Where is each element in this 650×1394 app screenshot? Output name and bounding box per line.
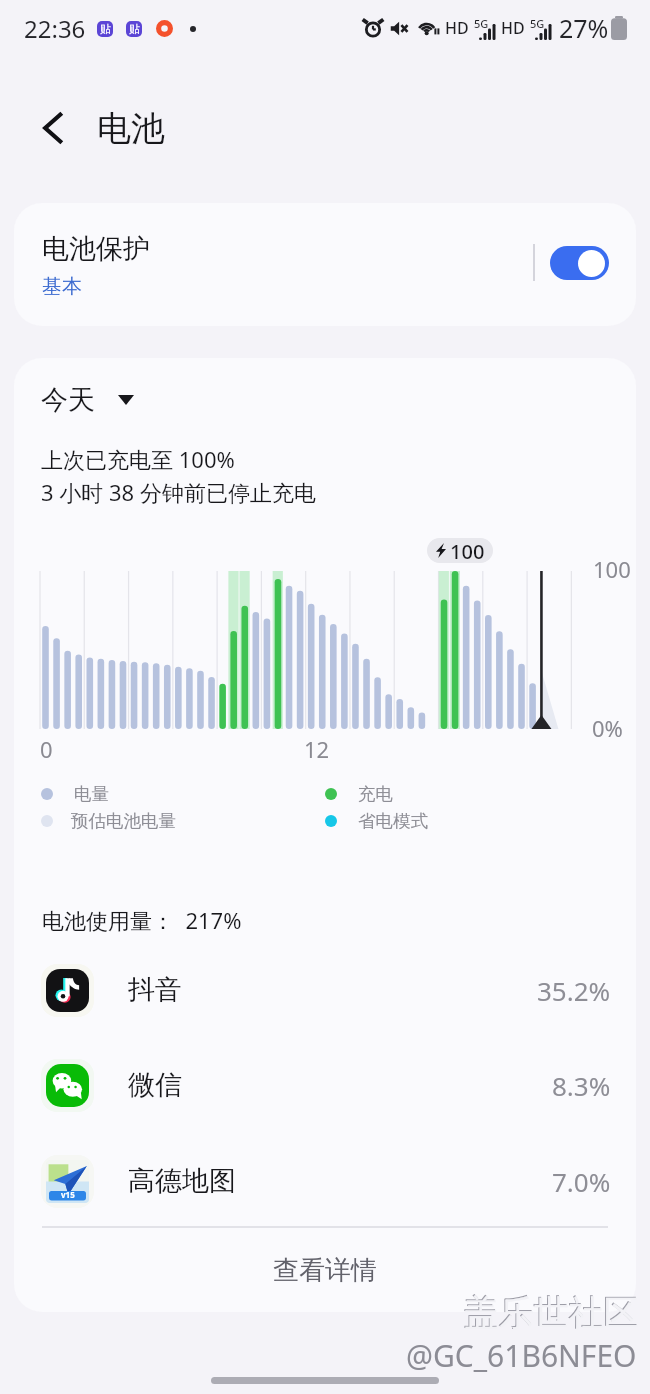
- staticText: 35.2%: [537, 973, 611, 1008]
- staticText: 100: [593, 554, 631, 584]
- button[interactable]: 今天: [41, 383, 134, 417]
- staticText: 电量: [74, 783, 109, 805]
- staticText: 5G: [474, 16, 489, 31]
- staticText: 今天: [41, 383, 95, 417]
- button[interactable]: 抖音: [14, 945, 636, 1035]
- staticText: 查看详情: [273, 1254, 377, 1287]
- staticText: 电池使用量： 217%: [42, 905, 242, 935]
- button[interactable]: 电池保护: [14, 203, 636, 326]
- staticText: 充电: [358, 783, 393, 805]
- staticText: 预估电池电量: [71, 810, 176, 832]
- staticText: HD: [445, 17, 469, 39]
- staticText: 微信: [128, 1068, 182, 1102]
- staticText: @GC_61B6NFEO: [406, 1335, 637, 1376]
- staticText: 贴: [100, 22, 111, 36]
- button[interactable]: Battery protection toggle: [550, 246, 609, 280]
- staticText: 100: [450, 538, 485, 563]
- staticText: 贴: [129, 22, 140, 36]
- staticText: 7.0%: [552, 1164, 611, 1199]
- staticText: 盖乐世社区: [464, 1291, 639, 1335]
- staticText: 上次已充电至 100%: [41, 444, 235, 474]
- staticText: 电池: [97, 107, 165, 150]
- staticText: 抖音: [128, 973, 182, 1007]
- staticText: 27%: [559, 11, 609, 45]
- button[interactable]: 查看详情: [14, 1228, 636, 1312]
- staticText: 3 小时 38 分钟前已停止充电: [41, 477, 316, 507]
- staticText: v15: [61, 1189, 75, 1200]
- staticText: 省电模式: [358, 810, 428, 832]
- staticText: 0: [40, 734, 53, 764]
- staticText: 盖乐世社区: [463, 1290, 638, 1334]
- staticText: 电池保护: [42, 232, 150, 266]
- staticText: 基本: [42, 274, 82, 299]
- button[interactable]: Back: [29, 104, 77, 152]
- staticText: 5G: [530, 16, 545, 31]
- staticText: 高德地图: [128, 1164, 236, 1198]
- staticText: 8.3%: [552, 1068, 611, 1103]
- button[interactable]: 微信: [14, 1040, 636, 1130]
- staticText: 22:36: [24, 12, 86, 45]
- staticText: 12: [304, 734, 330, 764]
- button[interactable]: v15: [14, 1136, 636, 1226]
- staticText: 0%: [592, 713, 623, 743]
- staticText: HD: [501, 17, 525, 39]
